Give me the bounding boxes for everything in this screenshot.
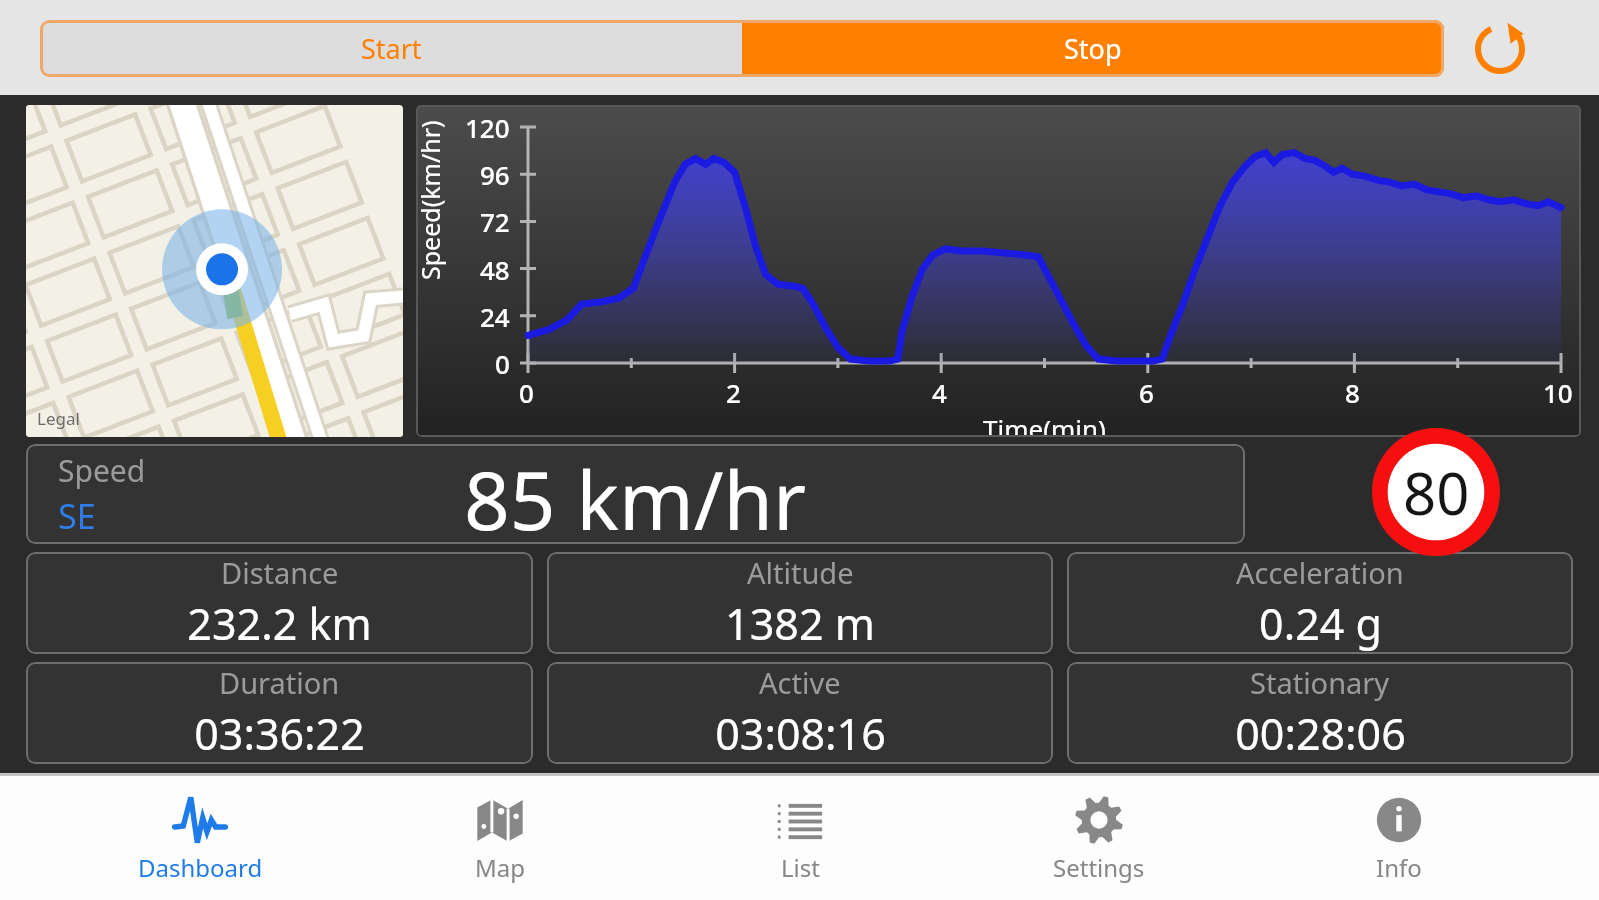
button[interactable]: Info [1299, 776, 1499, 900]
staticText: Map [475, 851, 525, 884]
staticText: 120 [465, 110, 510, 145]
staticText: 72 [480, 204, 510, 239]
staticText: Distance [221, 553, 339, 592]
staticText: List [781, 851, 820, 884]
button[interactable]: Active [547, 662, 1053, 764]
button[interactable]: Speed limit 80 [1372, 428, 1500, 556]
button[interactable]: Map [400, 776, 600, 900]
button[interactable]: 0 [416, 105, 1581, 437]
button[interactable]: Settings [999, 776, 1199, 900]
button[interactable]: Dashboard [100, 776, 300, 900]
staticText: 0.24 g [1259, 594, 1382, 653]
staticText: 2 [726, 375, 741, 410]
staticText: 24 [480, 299, 510, 334]
staticText: Settings [1053, 851, 1145, 884]
staticText: 00:28:06 [1235, 704, 1406, 763]
button[interactable]: Map preview [26, 105, 403, 437]
button[interactable]: Acceleration [1067, 552, 1573, 654]
button[interactable]: Duration [26, 662, 533, 764]
staticText: 80 [1403, 453, 1470, 532]
staticText: 10 [1543, 375, 1573, 410]
staticText: SE [58, 493, 96, 539]
button[interactable]: Start [40, 20, 742, 77]
button[interactable]: Stop [742, 20, 1444, 77]
staticText: Altitude [747, 553, 854, 592]
staticText: 6 [1139, 375, 1154, 410]
staticText: 03:08:16 [715, 704, 886, 763]
staticText: 0 [495, 346, 510, 381]
staticText: Speed(km/hr) [416, 120, 447, 280]
staticText: Duration [219, 663, 340, 702]
staticText: Legal [37, 407, 80, 430]
button[interactable]: Stationary [1067, 662, 1573, 764]
button[interactable]: Altitude [547, 552, 1053, 654]
staticText: 48 [480, 252, 510, 287]
staticText: 4 [932, 375, 947, 410]
button[interactable]: Distance [26, 552, 533, 654]
button[interactable]: List [700, 776, 900, 900]
staticText: Active [759, 663, 841, 702]
staticText: Speed [58, 450, 146, 491]
staticText: Dashboard [138, 851, 263, 884]
staticText: Info [1376, 851, 1422, 884]
staticText: 96 [480, 157, 510, 192]
button[interactable]: Refresh [1462, 11, 1538, 87]
button[interactable]: Speed [26, 444, 1245, 544]
staticText: Acceleration [1236, 553, 1404, 592]
staticText: 1382 m [725, 594, 875, 653]
staticText: Stop [1064, 30, 1122, 67]
staticText: 03:36:22 [194, 704, 365, 763]
staticText: 85 km/hr [464, 444, 807, 544]
staticText: 0 [519, 375, 534, 410]
staticText: Start [361, 30, 422, 67]
staticText: 232.2 km [187, 594, 372, 653]
staticText: Stationary [1250, 663, 1390, 702]
staticText: Time(min) [983, 411, 1106, 437]
staticText: 8 [1345, 375, 1360, 410]
